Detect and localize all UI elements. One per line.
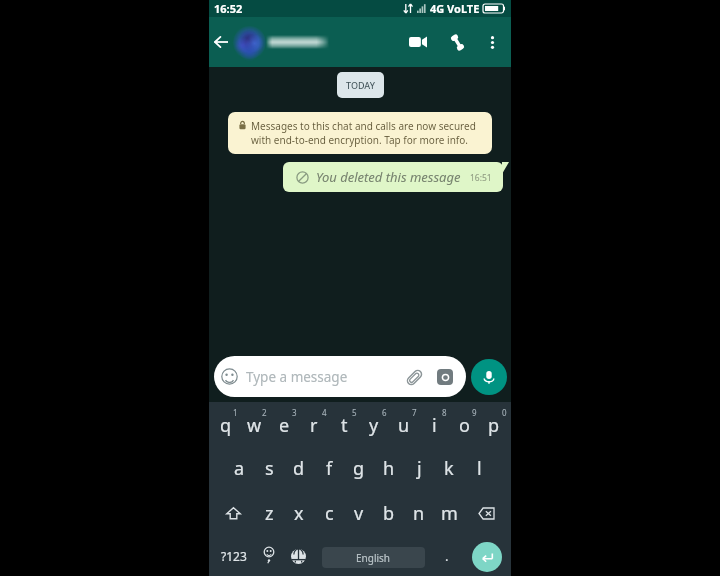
button[interactable]: ?123 (211, 536, 256, 576)
staticText: p (488, 413, 500, 438)
button[interactable]: n (404, 491, 434, 536)
staticText: 2 (262, 407, 267, 418)
button[interactable]: j (404, 446, 434, 491)
staticText: l (477, 456, 482, 481)
button[interactable]: i (419, 402, 449, 446)
staticText: 5 (352, 407, 357, 418)
staticText: 3 (292, 407, 297, 418)
button[interactable]: b (374, 491, 404, 536)
button[interactable]: m (434, 491, 464, 536)
button[interactable]: f (314, 446, 344, 491)
staticText: o (459, 413, 470, 438)
button[interactable]: u (389, 402, 419, 446)
staticText: 1 (233, 407, 238, 418)
staticText: . (445, 547, 449, 565)
button[interactable]: Enter (461, 536, 509, 576)
staticText: 0 (502, 407, 507, 418)
staticText: Type a message (246, 368, 403, 386)
button[interactable]: a (225, 446, 254, 491)
staticText: a (234, 456, 245, 481)
staticText: 4G VoLTE (430, 1, 480, 16)
staticText: h (383, 456, 395, 481)
button[interactable]: d (284, 446, 314, 491)
button[interactable]: s (254, 446, 284, 491)
staticText: 7 (412, 407, 417, 418)
staticText: r (310, 413, 318, 438)
staticText: b (383, 501, 395, 526)
button[interactable]: Change language (282, 536, 314, 576)
staticText: Messages to this chat and calls are now … (251, 119, 481, 147)
button[interactable]: x (284, 491, 314, 536)
button[interactable]: TODAY (337, 72, 384, 98)
staticText: e (279, 413, 290, 438)
button[interactable]: y (359, 402, 389, 446)
button[interactable]: Attach (403, 366, 425, 388)
button[interactable]: Camera (437, 369, 453, 385)
staticText: 9 (472, 407, 477, 418)
button[interactable]: t (329, 402, 359, 446)
staticText: v (354, 501, 364, 526)
staticText: t (341, 413, 348, 438)
staticText: i (432, 413, 437, 438)
button[interactable]: c (314, 491, 344, 536)
button[interactable]: Video call (398, 22, 438, 62)
staticText: English (356, 551, 391, 565)
button[interactable]: Call (438, 22, 476, 62)
staticText: n (413, 501, 425, 526)
staticText: d (293, 456, 305, 481)
button[interactable]: k (434, 446, 464, 491)
staticText: c (325, 501, 334, 526)
staticText: g (353, 456, 365, 481)
staticText: 8 (442, 407, 447, 418)
staticText: ?123 (221, 548, 247, 564)
staticText: 16:51 (470, 172, 492, 184)
staticText: j (417, 456, 422, 481)
button[interactable]: r (299, 402, 329, 446)
staticText: w (247, 413, 262, 438)
button[interactable]: g (344, 446, 374, 491)
staticText: m (441, 501, 458, 526)
button[interactable]: More options (476, 22, 508, 62)
staticText: u (398, 413, 410, 438)
button[interactable]: v (344, 491, 374, 536)
button[interactable]: English (322, 547, 425, 568)
button[interactable]: l (464, 446, 494, 491)
button[interactable]: You deleted this message (283, 162, 503, 192)
button[interactable]: Messages to this chat and calls are now … (228, 112, 492, 154)
button[interactable]: Type a message (214, 356, 466, 397)
staticText: 16:52 (214, 1, 243, 16)
staticText: z (265, 501, 274, 526)
button[interactable]: Back (209, 17, 233, 67)
staticText: s (265, 456, 274, 481)
button[interactable]: h (374, 446, 404, 491)
staticText: y (369, 413, 379, 438)
button[interactable]: w (240, 402, 269, 446)
staticText: You deleted this message (316, 168, 461, 186)
staticText: f (326, 456, 333, 481)
button[interactable]: . (433, 536, 461, 576)
button[interactable]: p (479, 402, 509, 446)
staticText: k (444, 456, 454, 481)
button[interactable] (233, 17, 398, 67)
staticText: q (220, 413, 232, 438)
button[interactable]: e (269, 402, 299, 446)
button[interactable]: Emoji (256, 536, 282, 576)
button[interactable]: z (255, 491, 284, 536)
button[interactable]: o (449, 402, 479, 446)
button[interactable]: Backspace (464, 491, 509, 536)
staticText: x (294, 501, 304, 526)
staticText: 4 (322, 407, 327, 418)
staticText: 6 (382, 407, 387, 418)
staticText: TODAY (346, 79, 375, 91)
button[interactable]: Shift (211, 491, 255, 536)
button[interactable]: Voice message (471, 359, 507, 395)
button[interactable]: q (211, 402, 240, 446)
